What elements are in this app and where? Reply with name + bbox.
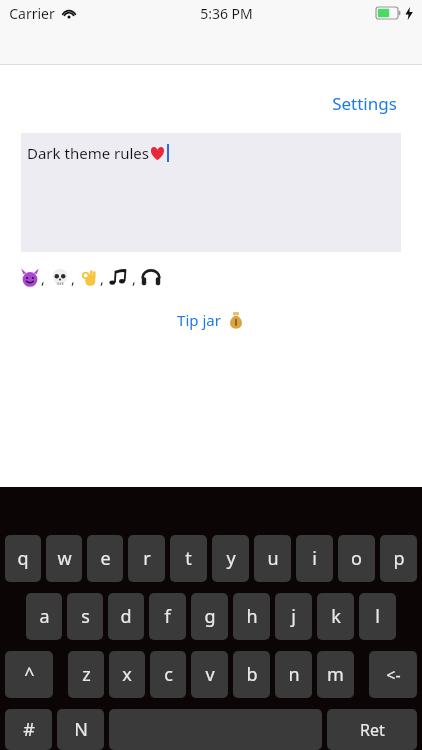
staticText: k [331, 604, 341, 629]
staticText: Dark theme rules [27, 143, 149, 163]
button[interactable]: l [359, 593, 396, 640]
staticText: , [71, 269, 75, 288]
button[interactable]: Next keyboard [57, 709, 104, 750]
button[interactable]: Shift [5, 651, 53, 698]
staticText: <- [386, 664, 401, 686]
staticText: y [226, 546, 236, 571]
staticText: # [23, 717, 35, 742]
staticText: q [17, 546, 29, 571]
button[interactable]: r [128, 535, 165, 582]
button[interactable]: j [275, 593, 312, 640]
staticText: x [122, 662, 132, 687]
button[interactable]: Dark theme rules [21, 133, 401, 252]
button[interactable]: i [296, 535, 333, 582]
staticText: w [57, 546, 72, 571]
staticText: i [312, 546, 317, 571]
staticText: b [246, 662, 258, 687]
staticText: f [164, 604, 171, 629]
button[interactable]: h [233, 593, 270, 640]
button[interactable]: f [149, 593, 186, 640]
staticText: e [100, 546, 111, 571]
staticText: g [204, 604, 216, 629]
staticText: , [132, 269, 136, 288]
staticText: u [267, 546, 279, 571]
staticText: n [288, 662, 300, 687]
staticText: Tip jar [177, 310, 221, 330]
button[interactable]: Tip jar [172, 307, 250, 333]
staticText: z [82, 662, 91, 687]
staticText: r [143, 546, 151, 571]
button[interactable]: o [338, 535, 375, 582]
staticText: o [351, 546, 362, 571]
button[interactable]: y [212, 535, 249, 582]
button[interactable]: u [254, 535, 291, 582]
staticText: p [393, 546, 405, 571]
staticText: c [164, 662, 173, 687]
button[interactable]: e [87, 535, 123, 582]
staticText: Carrier [9, 4, 55, 23]
staticText: , [100, 269, 104, 288]
button[interactable]: w [46, 535, 82, 582]
staticText: 5:36 PM [200, 4, 253, 23]
button[interactable]: g [191, 593, 228, 640]
button[interactable]: Symbols [5, 709, 52, 750]
button[interactable]: c [150, 651, 186, 698]
button[interactable]: p [380, 535, 417, 582]
button[interactable]: Backspace [369, 651, 417, 698]
button[interactable]: Ret [327, 709, 417, 750]
button[interactable]: n [275, 651, 312, 698]
staticText: a [39, 604, 50, 629]
staticText: j [291, 604, 296, 629]
button[interactable]: Settings [328, 89, 401, 118]
button[interactable]: m [317, 651, 354, 698]
staticText: v [205, 662, 215, 687]
button[interactable]: a [26, 593, 62, 640]
staticText: d [120, 604, 132, 629]
button[interactable]: d [108, 593, 144, 640]
staticText: Settings [332, 92, 397, 115]
staticText: Ret [360, 719, 385, 741]
staticText: m [327, 662, 344, 687]
button[interactable]: s [67, 593, 103, 640]
staticText: N [74, 717, 88, 742]
staticText: s [81, 604, 90, 629]
button[interactable]: z [68, 651, 104, 698]
staticText: t [185, 546, 192, 571]
button[interactable]: k [317, 593, 354, 640]
button[interactable]: q [5, 535, 41, 582]
staticText: , [41, 269, 45, 288]
staticText: ^ [24, 662, 35, 687]
button[interactable]: v [191, 651, 228, 698]
staticText: l [375, 604, 380, 629]
button[interactable]: b [233, 651, 270, 698]
button[interactable]: x [109, 651, 145, 698]
button[interactable]: t [170, 535, 207, 582]
staticText: h [246, 604, 258, 629]
